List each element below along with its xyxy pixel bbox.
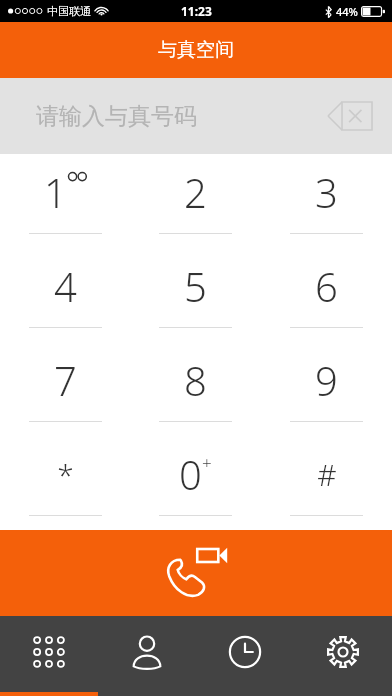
staticText: 9 [315,353,338,407]
staticText: 请输入与真号码 [36,102,197,131]
staticText: 中国联通 [47,4,91,18]
button[interactable]: 2 [130,154,261,248]
staticText: 4 [54,259,77,313]
staticText: 8 [184,353,207,407]
button[interactable]: 5 [130,248,261,342]
staticText: 11:23 [181,3,212,19]
staticText: 2 [184,165,207,219]
staticText: # [317,454,337,495]
button[interactable]: Dialpad [0,616,98,696]
staticText: 1 [44,165,67,219]
staticText: 6 [315,259,338,313]
staticText: 3 [315,165,338,219]
staticText: 7 [54,353,77,407]
button[interactable]: 7 [0,342,130,436]
button[interactable]: 9 [261,342,392,436]
button[interactable]: Recents [196,616,294,696]
staticText: + [202,451,212,474]
button[interactable]: 8 [130,342,261,436]
button[interactable]: Backspace [324,96,376,136]
button[interactable]: 1 [0,154,130,248]
button[interactable]: 6 [261,248,392,342]
staticText: 0 [179,447,202,501]
staticText: * [57,454,74,495]
staticText: 44% [336,4,358,19]
staticText: 5 [184,259,207,313]
button[interactable]: 3 [261,154,392,248]
button[interactable]: 4 [0,248,130,342]
button[interactable]: 0 [130,436,261,530]
button[interactable]: Video call [0,530,392,616]
button[interactable]: * [0,436,130,530]
button[interactable]: Contacts [98,616,196,696]
button[interactable]: Settings [294,616,392,696]
button[interactable]: 请输入与真号码 [0,78,392,154]
staticText: 与真空间 [158,38,234,62]
button[interactable]: # [261,436,392,530]
